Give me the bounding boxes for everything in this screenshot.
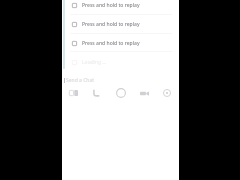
button[interactable]: Press and hold to replay	[62, 0, 179, 13]
staticText: Press and hold to replay	[82, 21, 140, 28]
button[interactable]: Press and hold to replay	[62, 35, 179, 51]
button[interactable]: Press and hold to replay	[62, 16, 179, 32]
button[interactable]: Open camera	[112, 85, 130, 101]
staticText: Loading ...	[82, 59, 107, 66]
button[interactable]: Voice call	[87, 85, 105, 101]
staticText: Send a Chat	[66, 77, 94, 84]
staticText: Press and hold to replay	[82, 40, 140, 47]
button[interactable]: Send a Chat	[62, 74, 179, 87]
button[interactable]: Video call	[135, 85, 153, 101]
button[interactable]: Stickers	[158, 85, 176, 101]
button[interactable]: Open gallery	[64, 85, 82, 101]
staticText: Press and hold to replay	[82, 2, 140, 9]
